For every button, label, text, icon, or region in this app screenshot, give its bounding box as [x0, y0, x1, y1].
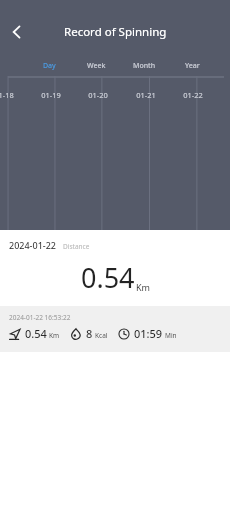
button[interactable]: Back	[0, 18, 34, 46]
staticText: Month	[133, 61, 156, 71]
staticText: Kcal	[95, 331, 108, 340]
staticText: Week	[87, 61, 106, 71]
staticText: 01-18	[0, 90, 14, 100]
staticText: 01-21	[136, 90, 156, 100]
button[interactable]: Day	[26, 60, 73, 72]
staticText: 01-20	[88, 90, 108, 100]
button[interactable]: Year	[168, 60, 216, 72]
staticText: 0.54	[81, 259, 135, 296]
staticText: 01:59	[134, 326, 163, 341]
staticText: 01-19	[41, 90, 61, 100]
staticText: Record of Spinning	[64, 24, 167, 40]
staticText: 8	[86, 326, 93, 341]
staticText: Distance	[63, 242, 90, 251]
staticText: 01-22	[183, 90, 203, 100]
button[interactable]: Month	[120, 60, 168, 72]
staticText: Km	[49, 331, 60, 340]
staticText: 2024-01-22 16:53:22	[9, 313, 71, 322]
button[interactable]: 2024-01-22 16:53:22	[0, 306, 230, 352]
staticText: Km	[136, 281, 150, 293]
staticText: 0.54	[25, 326, 47, 341]
staticText: Min	[165, 331, 177, 340]
staticText: Day	[43, 61, 56, 71]
staticText: 2024-01-22	[9, 239, 56, 251]
button[interactable]: Week	[73, 60, 120, 72]
staticText: Year	[185, 61, 200, 71]
